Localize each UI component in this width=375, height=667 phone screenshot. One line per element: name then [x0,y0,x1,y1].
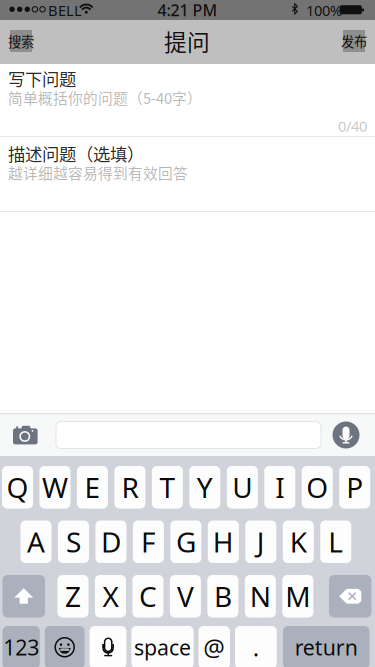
staticText: F [141,523,156,560]
button[interactable]: B [207,575,238,617]
staticText: 4:21 PM [157,0,217,21]
button[interactable]: M [282,575,313,617]
button[interactable]: return [283,626,369,667]
button[interactable]: 搜索 [10,30,32,52]
staticText: Y [197,469,213,506]
staticText: C [139,578,157,615]
button[interactable]: V [170,575,201,617]
staticText: U [232,469,252,506]
staticText: 发布 [341,31,367,51]
staticText: 100% [306,0,342,20]
staticText: X [102,578,118,615]
button[interactable]: Delete [329,575,371,617]
staticText: Q [6,469,28,506]
button[interactable]: I [264,466,295,508]
staticText: 123 [3,633,39,661]
staticText: . [253,631,259,663]
staticText: space [134,633,191,661]
button[interactable]: Voice input [332,421,360,449]
staticText: 写下问题 [8,66,76,91]
button[interactable]: S [58,520,89,563]
staticText: S [66,523,81,560]
button[interactable]: 发布 [343,30,365,52]
staticText: G [176,523,196,560]
staticText: 描述问题（选填） [8,141,144,166]
button[interactable]: 123 [2,626,40,667]
button[interactable]: O [302,466,333,508]
staticText: 简单概括你的问题（5-40字） [8,87,202,108]
button[interactable]: K [283,520,314,563]
button[interactable]: H [208,520,239,563]
staticText: 0/40 [338,116,367,136]
staticText: V [177,578,194,615]
staticText: A [27,523,45,560]
button[interactable]: Y [189,466,220,508]
button[interactable]: F [133,520,164,563]
button[interactable]: U [227,466,258,508]
button[interactable]: Z [57,575,88,617]
button[interactable]: C [132,575,163,617]
staticText: I [275,469,284,506]
staticText: 搜索 [8,31,34,51]
button[interactable]: space [131,626,194,667]
staticText: E [84,469,100,506]
button[interactable]: Shift [2,575,45,617]
staticText: R [121,469,138,506]
button[interactable]: . [235,626,277,667]
button[interactable]: N [245,575,276,617]
button[interactable]: T [152,466,183,508]
staticText: B [214,578,232,615]
button[interactable]: @ [198,626,230,667]
staticText: H [213,523,234,560]
button[interactable]: W [39,466,70,508]
staticText: @ [203,631,225,663]
staticText: BELL [48,0,82,20]
button[interactable]: E [77,466,108,508]
staticText: Z [65,578,81,615]
button[interactable]: Emoji [45,626,85,667]
button[interactable]: Add photo [3,414,47,457]
button[interactable]: A [20,520,51,563]
staticText: W [42,469,68,506]
staticText: P [346,469,363,506]
button[interactable]: Dictation [90,626,126,667]
button[interactable]: P [339,466,370,508]
button[interactable]: L [320,520,351,563]
staticText: 提问 [164,25,210,57]
staticText: O [306,469,328,506]
button[interactable]: Q [2,466,33,508]
staticText: K [290,523,307,560]
staticText: 越详细越容易得到有效回答 [8,162,188,183]
staticText: L [328,523,343,560]
button[interactable]: R [114,466,145,508]
staticText: D [101,523,121,560]
staticText: T [159,469,175,506]
button[interactable]: J [245,520,276,563]
staticText: J [257,523,265,560]
button[interactable]: X [95,575,126,617]
staticText: return [295,633,358,661]
staticText: M [285,578,310,615]
button[interactable]: D [95,520,126,563]
staticText: N [250,578,271,615]
button[interactable]: G [170,520,201,563]
